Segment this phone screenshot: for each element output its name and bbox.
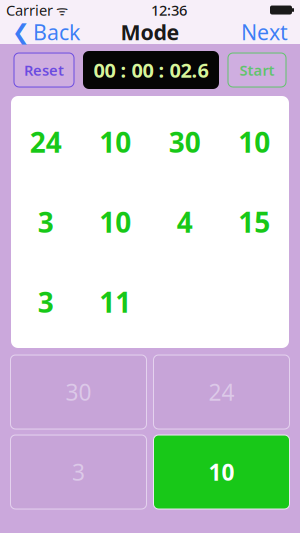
staticText: ❮ (12, 20, 30, 44)
staticText: 24 (208, 377, 234, 407)
staticText: 30 (169, 123, 201, 161)
button[interactable]: 3 (10, 435, 146, 509)
staticText: 3 (72, 457, 85, 487)
staticText: 00 : 00 : 02.6 (93, 57, 208, 83)
staticText: 4 (177, 203, 193, 241)
button[interactable]: 24 (153, 355, 289, 429)
staticText: Next (241, 18, 288, 46)
button[interactable]: Next (233, 20, 296, 44)
staticText: Mode (120, 18, 179, 46)
staticText: Reset (24, 60, 64, 80)
button[interactable]: Start (228, 53, 286, 87)
button[interactable]: 10 (153, 435, 289, 509)
staticText: 12:36 (151, 0, 187, 20)
staticText: ᯤ (53, 1, 68, 19)
staticText: 10 (238, 123, 270, 161)
staticText: 3 (38, 203, 54, 241)
staticText: 15 (238, 203, 270, 241)
staticText: 24 (30, 123, 62, 161)
staticText: Start (239, 60, 274, 80)
button[interactable]: ❮ (4, 20, 88, 44)
staticText: Carrier (6, 0, 53, 20)
staticText: 11 (99, 283, 131, 321)
staticText: 10 (99, 123, 131, 161)
staticText: 10 (99, 203, 131, 241)
button[interactable]: Reset (14, 53, 74, 87)
button[interactable]: 30 (10, 355, 146, 429)
staticText: Back (33, 18, 80, 46)
staticText: 3 (38, 283, 54, 321)
staticText: 10 (208, 457, 234, 487)
staticText: 30 (65, 377, 91, 407)
